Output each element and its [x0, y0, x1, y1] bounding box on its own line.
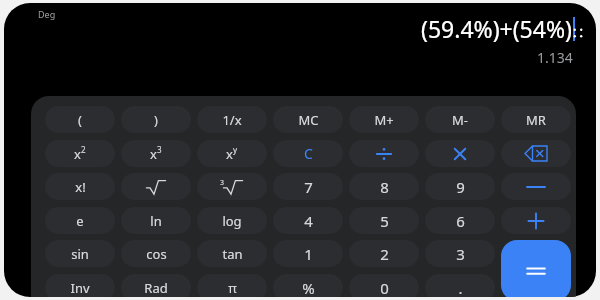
- button[interactable]: Rad: [121, 274, 191, 297]
- staticText: 8: [380, 177, 389, 197]
- staticText: 1: [304, 244, 313, 264]
- button[interactable]: 4: [273, 207, 343, 234]
- staticText: x: [226, 145, 233, 163]
- staticText: ): [154, 111, 158, 129]
- staticText: x!: [75, 178, 86, 196]
- button[interactable]: Divide: [349, 140, 419, 167]
- staticText: (59.4%)+(54%): [421, 13, 572, 44]
- button[interactable]: cos: [121, 240, 191, 267]
- button[interactable]: .: [425, 274, 495, 297]
- staticText: 5: [380, 211, 389, 231]
- button[interactable]: 2: [349, 240, 419, 267]
- button[interactable]: Backspace: [501, 140, 571, 167]
- button[interactable]: x!: [45, 173, 115, 200]
- staticText: M+: [374, 111, 394, 129]
- staticText: MC: [298, 111, 319, 129]
- staticText: y: [233, 144, 238, 155]
- staticText: C: [304, 144, 313, 163]
- staticText: ln: [150, 212, 162, 230]
- button[interactable]: 5: [349, 207, 419, 234]
- staticText: Deg: [38, 8, 56, 20]
- staticText: log: [222, 212, 242, 230]
- staticText: .: [458, 278, 463, 297]
- staticText: sin: [71, 245, 89, 263]
- button[interactable]: M+: [349, 106, 419, 133]
- staticText: %: [302, 278, 315, 297]
- staticText: 2: [380, 244, 389, 264]
- button[interactable]: 8: [349, 173, 419, 200]
- button[interactable]: More options: [568, 23, 588, 43]
- staticText: 3: [456, 244, 465, 264]
- button[interactable]: sin: [45, 240, 115, 267]
- staticText: 1.134: [537, 48, 573, 67]
- staticText: 6: [456, 211, 465, 231]
- button[interactable]: MR: [501, 106, 571, 133]
- button[interactable]: x: [45, 140, 115, 167]
- staticText: x: [150, 145, 157, 163]
- staticText: M-: [452, 111, 468, 129]
- button[interactable]: Minus: [501, 173, 571, 200]
- button[interactable]: Square root: [121, 173, 191, 200]
- staticText: 7: [304, 177, 313, 197]
- button[interactable]: M-: [425, 106, 495, 133]
- staticText: 2: [81, 144, 86, 155]
- button[interactable]: (: [45, 106, 115, 133]
- staticText: 3: [157, 144, 162, 155]
- button[interactable]: %: [273, 274, 343, 297]
- staticText: π: [228, 279, 237, 297]
- button[interactable]: Multiply: [425, 140, 495, 167]
- button[interactable]: tan: [197, 240, 267, 267]
- button[interactable]: 0: [349, 274, 419, 297]
- button[interactable]: 7: [273, 173, 343, 200]
- staticText: tan: [222, 245, 243, 263]
- button[interactable]: ): [121, 106, 191, 133]
- button[interactable]: MC: [273, 106, 343, 133]
- button[interactable]: 3: [425, 240, 495, 267]
- staticText: e: [76, 212, 84, 230]
- button[interactable]: 6: [425, 207, 495, 234]
- staticText: 9: [456, 177, 465, 197]
- staticText: Inv: [70, 279, 90, 297]
- staticText: (: [78, 111, 82, 129]
- button[interactable]: C: [273, 140, 343, 167]
- staticText: 1/x: [222, 111, 242, 129]
- staticText: x: [74, 145, 81, 163]
- button[interactable]: Plus: [501, 207, 571, 234]
- button[interactable]: π: [197, 274, 267, 297]
- button[interactable]: x: [121, 140, 191, 167]
- staticText: cos: [146, 245, 167, 263]
- staticText: 3: [220, 178, 225, 188]
- button[interactable]: e: [45, 207, 115, 234]
- button[interactable]: Inv: [45, 274, 115, 297]
- button[interactable]: log: [197, 207, 267, 234]
- staticText: MR: [526, 111, 546, 129]
- button[interactable]: 1/x: [197, 106, 267, 133]
- button[interactable]: 1: [273, 240, 343, 267]
- button[interactable]: ln: [121, 207, 191, 234]
- staticText: 4: [304, 211, 313, 231]
- staticText: 0: [380, 278, 389, 297]
- button[interactable]: Cube root: [197, 173, 267, 200]
- button[interactable]: Equals: [501, 240, 571, 297]
- staticText: Rad: [144, 279, 168, 297]
- button[interactable]: 9: [425, 173, 495, 200]
- button[interactable]: x: [197, 140, 267, 167]
